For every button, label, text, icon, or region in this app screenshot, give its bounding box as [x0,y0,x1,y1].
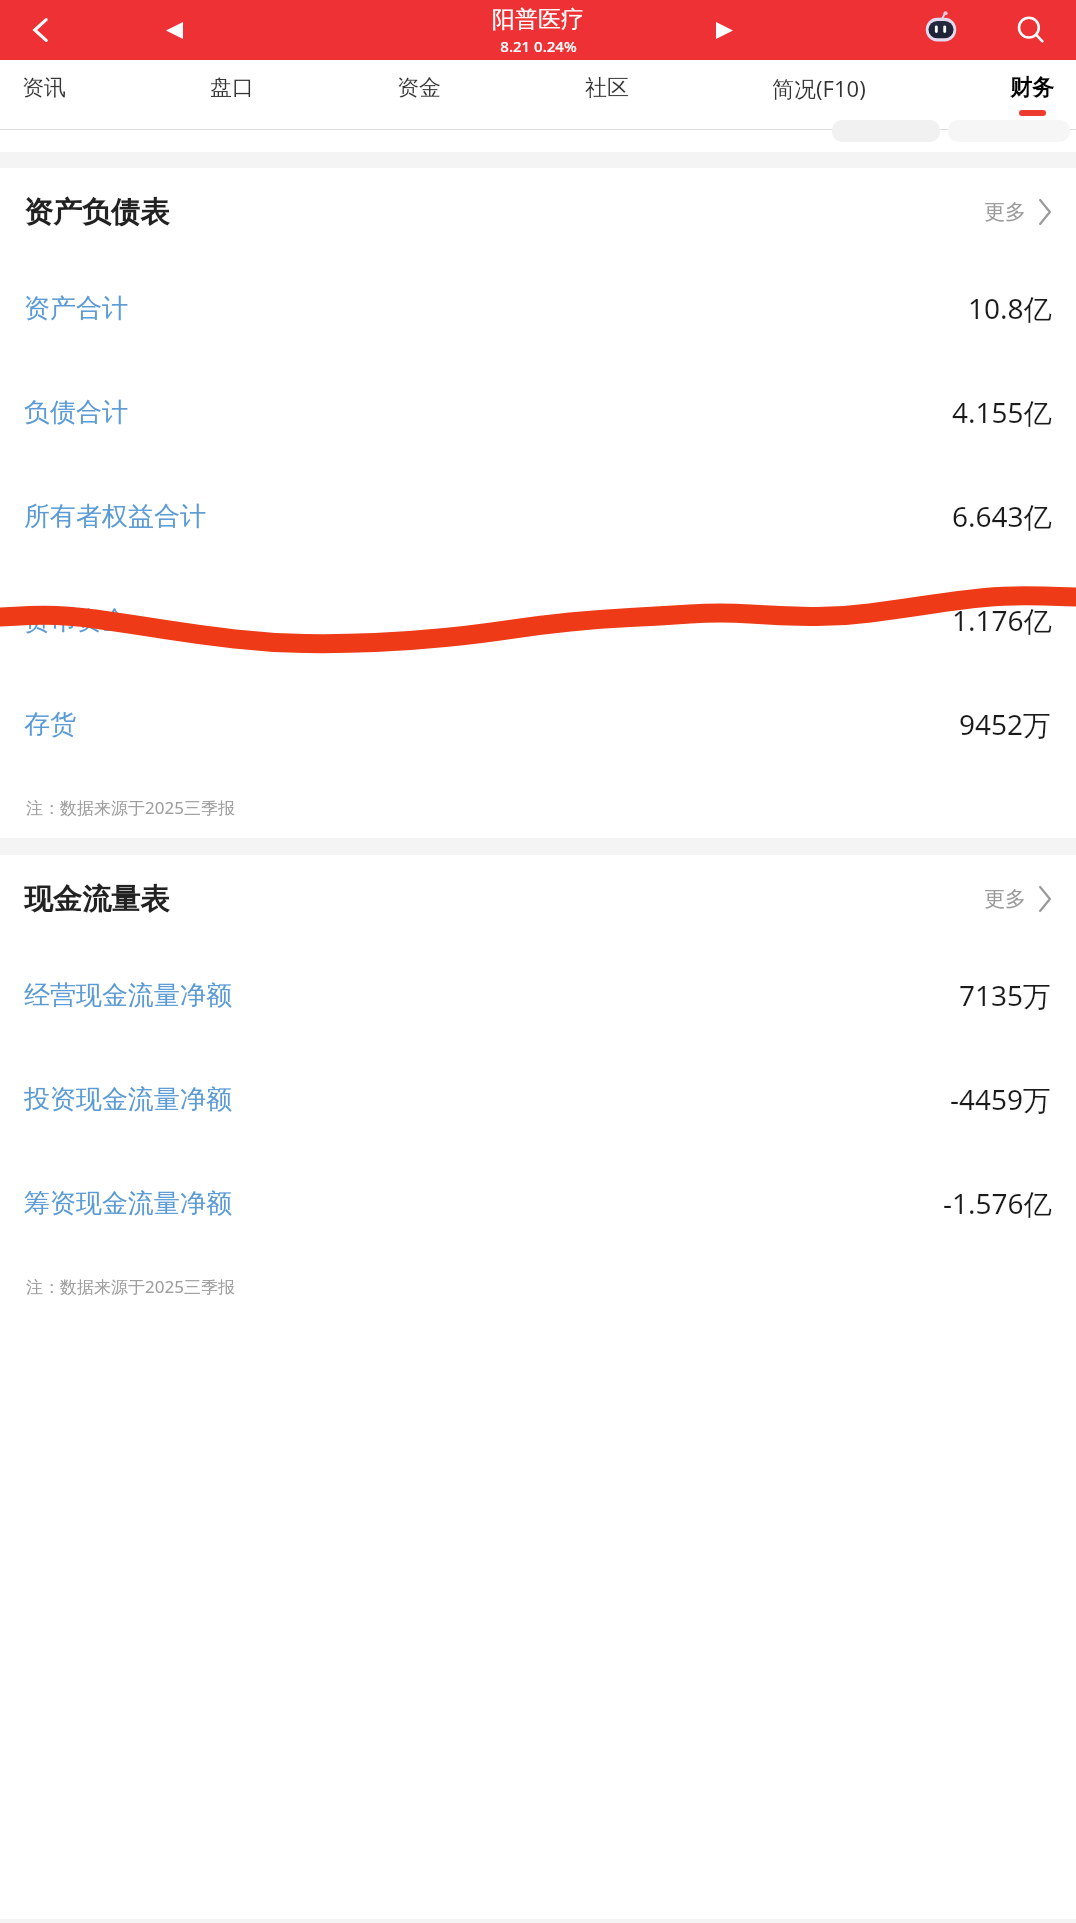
button[interactable]: 资金 [397,60,441,130]
button[interactable]: 资产合计 [0,256,1076,360]
button[interactable]: 筹资现金流量净额 [0,1151,1076,1255]
staticText: 经营现金流量净额 [24,979,232,1012]
staticText: 社区 [585,74,629,102]
staticText: 1.176亿 [952,601,1052,639]
staticText: 注：数据来源于2025三季报 [26,796,235,819]
staticText: 负债合计 [24,396,128,429]
staticText: 资金 [397,74,441,102]
staticText: 资讯 [22,74,66,102]
button[interactable]: 存货 [0,672,1076,776]
button[interactable]: 简况(F10) [772,60,866,130]
staticText: 存货 [24,708,76,741]
button[interactable]: 更多 [984,886,1052,912]
button[interactable]: Previous stock [152,8,196,52]
button[interactable]: 财务 [1010,60,1054,130]
button[interactable]: 资讯 [22,60,66,130]
staticText: 7135万 [959,976,1052,1014]
staticText: 6.643亿 [952,497,1052,535]
button[interactable]: 更多 [984,199,1052,225]
button[interactable]: Search [1006,5,1056,55]
button[interactable]: 投资现金流量净额 [0,1047,1076,1151]
staticText: 4.155亿 [952,393,1052,431]
button[interactable]: 经营现金流量净额 [0,943,1076,1047]
staticText: 9452万 [959,705,1052,743]
staticText: 盘口 [210,74,254,102]
staticText: 8.21 0.24% [500,36,577,56]
staticText: 资产合计 [24,292,128,325]
button[interactable]: AI assistant [916,5,966,55]
staticText: 简况(F10) [772,73,866,103]
staticText: 现金流量表 [24,881,169,918]
button[interactable]: Next stock [702,8,746,52]
staticText: 货币资金 [24,604,128,637]
button[interactable]: 盘口 [210,60,254,130]
staticText: 更多 [984,199,1026,225]
button[interactable]: 货币资金 [0,568,1076,672]
staticText: 所有者权益合计 [24,500,206,533]
staticText: -1.576亿 [943,1184,1052,1222]
staticText: 10.8亿 [968,289,1052,327]
staticText: 注：数据来源于2025三季报 [26,1275,235,1298]
staticText: -4459万 [950,1080,1052,1118]
staticText: 更多 [984,886,1026,912]
staticText: 阳普医疗 [492,5,584,34]
staticText: 投资现金流量净额 [24,1083,232,1116]
button[interactable]: Back [18,7,64,53]
staticText: 筹资现金流量净额 [24,1187,232,1220]
button[interactable]: 负债合计 [0,360,1076,464]
button[interactable]: 社区 [585,60,629,130]
button[interactable]: 所有者权益合计 [0,464,1076,568]
staticText: 财务 [1010,74,1054,102]
staticText: 资产负债表 [24,194,169,231]
